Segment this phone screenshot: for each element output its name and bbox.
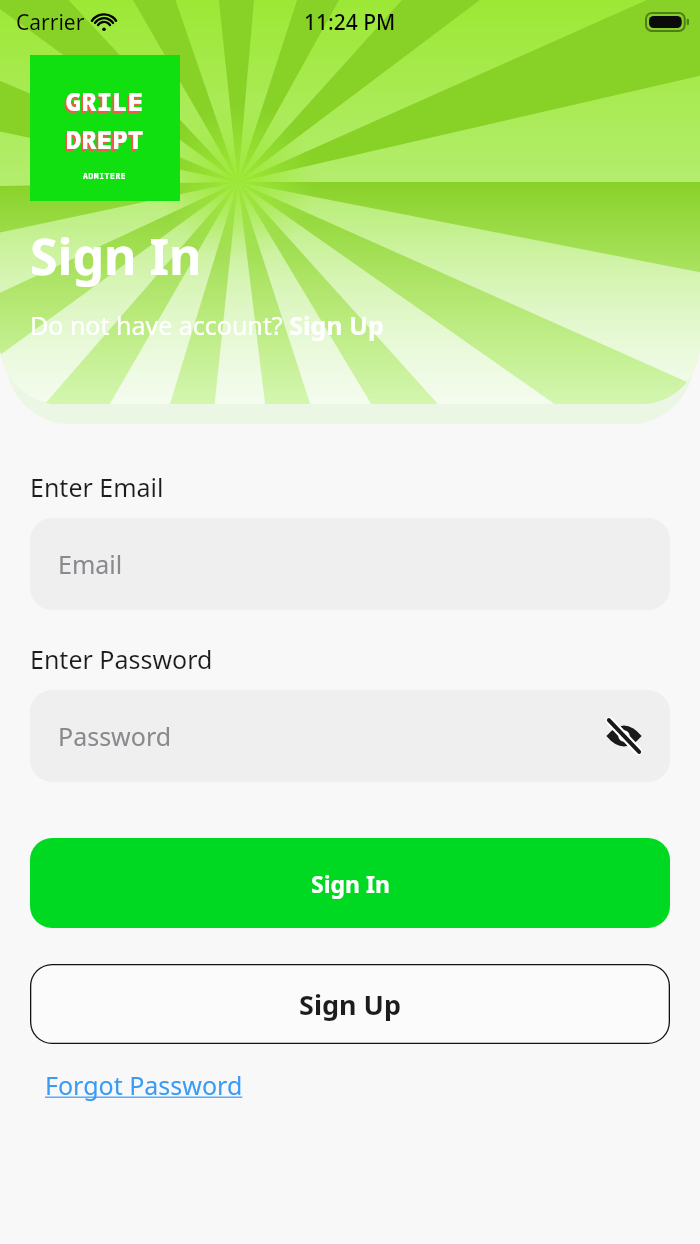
staticText: ADMITERE: [83, 170, 127, 181]
button[interactable]: Sign In: [30, 838, 670, 928]
staticText: 11:24 PM: [304, 8, 396, 37]
staticText: DREPT: [66, 122, 144, 156]
button[interactable]: Sign Up: [30, 964, 670, 1044]
button[interactable]: Email: [30, 518, 670, 610]
button[interactable]: Do not have account? Sign Up: [30, 308, 384, 342]
staticText: Sign In: [30, 222, 202, 290]
button[interactable]: Password: [30, 690, 670, 782]
staticText: DREPT: [64, 124, 142, 158]
staticText: GRILE: [64, 86, 142, 120]
staticText: Enter Password: [30, 642, 213, 676]
button[interactable]: Forgot Password: [45, 1068, 243, 1102]
staticText: Email: [58, 547, 123, 581]
button[interactable]: Grile Drept logo: [30, 55, 180, 201]
staticText: GRILE: [66, 84, 144, 118]
staticText: Sign In: [311, 868, 390, 899]
staticText: Sign Up: [299, 986, 402, 1023]
button[interactable]: Show password: [598, 710, 650, 762]
staticText: Enter Email: [30, 470, 164, 504]
staticText: Carrier: [16, 8, 85, 37]
staticText: Password: [58, 719, 172, 753]
